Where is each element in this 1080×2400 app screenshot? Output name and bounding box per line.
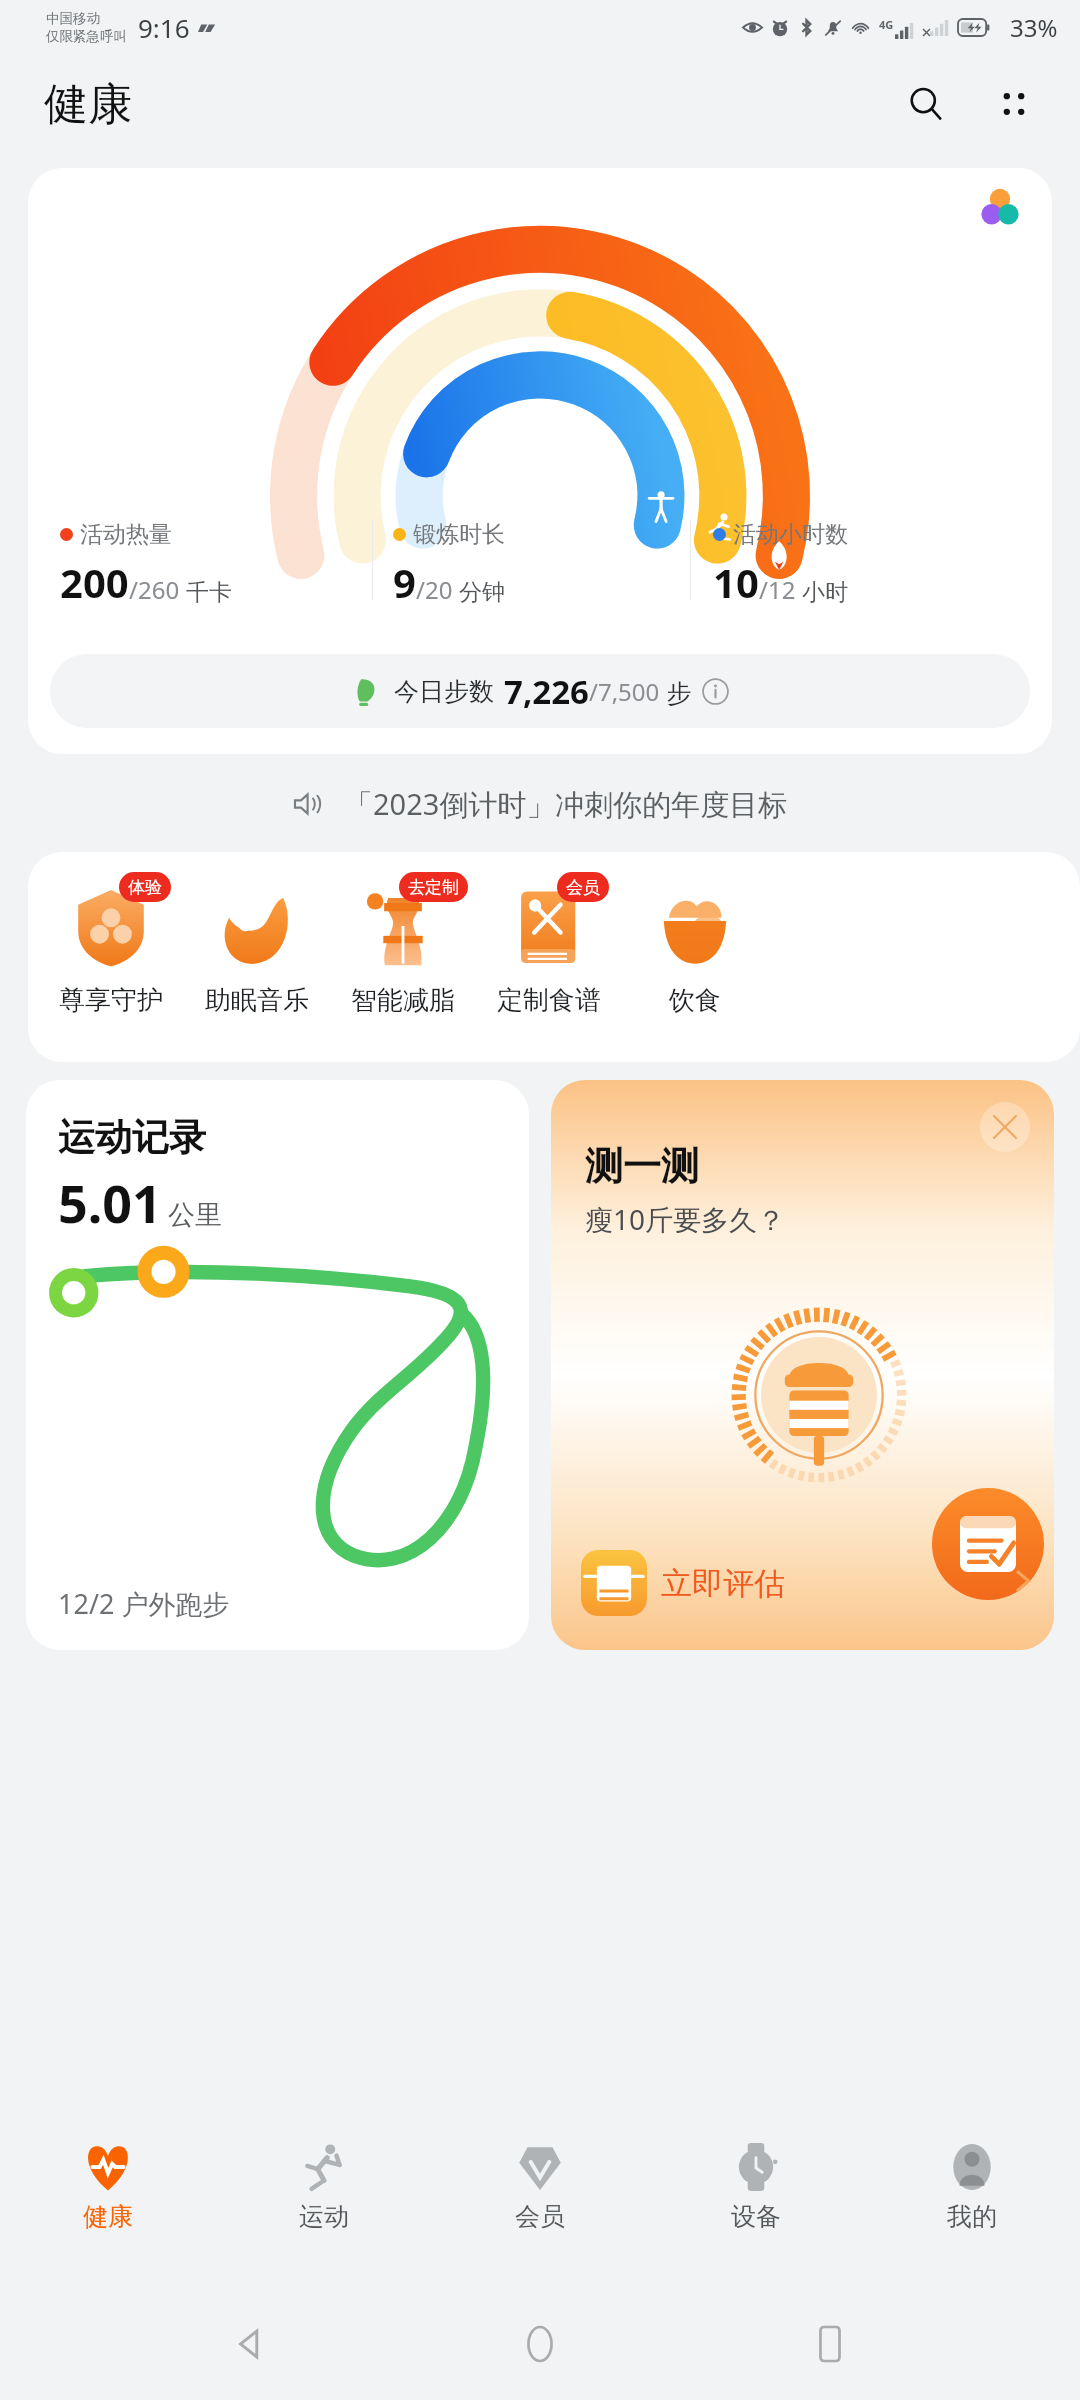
staticText: 运动 [299,2201,349,2232]
button[interactable]: Search [894,72,958,136]
button[interactable]: 今日步数 [50,654,1030,728]
button[interactable]: Close [551,1080,1054,1650]
staticText: 去定制 [408,877,459,898]
staticText: 5.01 [58,1167,162,1238]
staticText: 步 [660,675,692,709]
button[interactable]: 健康 [0,2123,216,2288]
staticText: /20 [416,573,453,606]
staticText: 分钟 [453,575,505,606]
staticText: 定制食谱 [497,984,601,1017]
staticText: 9 [393,555,416,609]
button[interactable]: 饮食 [622,878,768,1017]
staticText: /260 [129,573,180,606]
button[interactable]: 活动热量 [28,168,1052,754]
staticText: 200 [60,555,129,609]
staticText: 9:16 [138,10,190,45]
staticText: 仅限紧急呼叫 [46,28,127,45]
button[interactable]: Recents [790,2304,870,2384]
staticText: 活动小时数 [733,520,848,549]
staticText: 「2023倒计时」冲刺你的年度目标 [344,784,788,824]
button[interactable]: 助眠音乐 [184,878,330,1017]
staticText: 10 [713,555,759,609]
staticText: 立即评估 [661,1564,785,1603]
staticText: /12 [759,573,796,606]
staticText: 助眠音乐 [205,984,309,1017]
staticText: 健康 [44,77,132,132]
button[interactable]: 去定制 [330,878,476,1017]
staticText: 瘦10斤要多久？ [585,1200,786,1238]
button[interactable]: 会员 [432,2123,648,2288]
staticText: 会员 [515,2201,565,2232]
staticText: 饮食 [669,984,721,1017]
button[interactable]: Home [500,2304,580,2384]
button[interactable]: 设备 [648,2123,864,2288]
staticText: 体验 [128,877,162,898]
staticText: 中国移动 [46,10,100,27]
staticText: 今日步数 [394,676,494,707]
button[interactable]: Close [980,1102,1030,1152]
button[interactable]: Back [210,2304,290,2384]
staticText: 小时 [796,575,848,606]
button[interactable]: 会员 [476,878,622,1017]
staticText: 健康 [83,2201,133,2232]
button[interactable]: More options [982,72,1046,136]
staticText: 活动热量 [80,520,172,549]
staticText: 运动记录 [58,1114,206,1161]
staticText: /7,500 [589,675,660,708]
staticText: 尊享守护 [59,984,163,1017]
button[interactable]: Health profile [948,168,1052,246]
staticText: 智能减脂 [351,984,455,1017]
staticText: 锻炼时长 [413,520,505,549]
button[interactable]: Start assessment [932,1488,1044,1600]
staticText: 测一测 [585,1142,699,1190]
staticText: 千卡 [180,575,232,606]
button[interactable]: 运动记录 [26,1080,529,1650]
staticText: 4G [879,17,894,32]
staticText: 33% [1010,11,1058,44]
staticText: 12/2 户外跑步 [58,1585,230,1622]
button[interactable]: 体验 [38,878,184,1017]
staticText: 设备 [731,2201,781,2232]
staticText: 我的 [947,2201,997,2232]
staticText: 7,226 [504,669,589,714]
button[interactable]: 我的 [864,2123,1080,2288]
staticText: 公里 [168,1198,222,1232]
button[interactable]: 「2023倒计时」冲刺你的年度目标 [0,776,1080,832]
staticText: 会员 [566,877,600,898]
button[interactable]: 运动 [216,2123,432,2288]
